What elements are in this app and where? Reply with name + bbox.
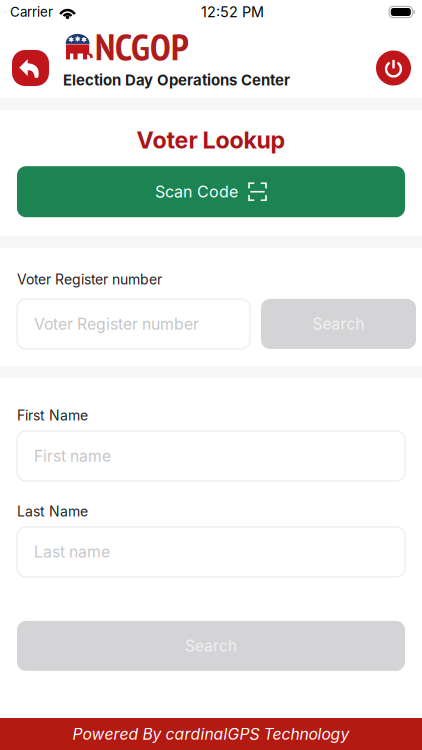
- staticText: Search: [185, 637, 237, 655]
- staticText: First name: [34, 446, 111, 465]
- button[interactable]: Search: [17, 621, 405, 671]
- button[interactable]: Search: [261, 299, 416, 349]
- staticText: Voter Register number: [34, 314, 199, 333]
- staticText: Election Day Operations Center: [63, 71, 290, 89]
- button[interactable]: Back: [6, 44, 55, 92]
- staticText: Last name: [34, 542, 110, 561]
- staticText: Scan Code: [155, 182, 238, 201]
- staticText: Powered By cardinalGPS Technology: [72, 724, 349, 743]
- staticText: NCGOP: [95, 22, 189, 71]
- button[interactable]: Log out: [370, 44, 417, 92]
- staticText: Voter Register number: [17, 271, 162, 288]
- staticText: Last Name: [17, 503, 88, 520]
- button[interactable]: Scan Code: [17, 166, 405, 217]
- staticText: First Name: [17, 407, 88, 424]
- staticText: Search: [312, 315, 364, 333]
- staticText: 12:52 PM: [201, 3, 264, 21]
- staticText: Voter Lookup: [136, 126, 285, 154]
- staticText: Carrier: [10, 4, 53, 20]
